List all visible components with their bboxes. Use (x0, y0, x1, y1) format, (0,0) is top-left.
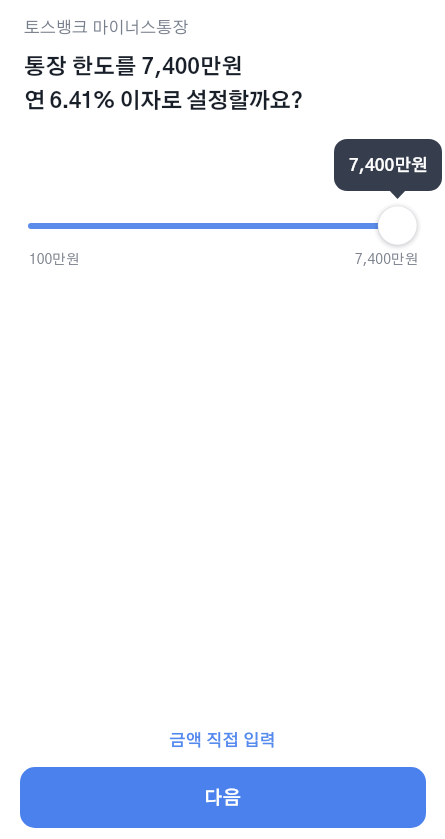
staticText: 연 6.41% 이자로 설정할까요? (24, 91, 303, 113)
staticText: 7,400만원 (355, 253, 418, 267)
button[interactable]: 다음 (20, 767, 426, 828)
staticText: 토스뱅크 마이너스통장 (24, 20, 189, 37)
staticText: 통장 한도를 7,400만원 (24, 57, 243, 79)
staticText: 100만원 (29, 253, 80, 267)
staticText: 금액 직접 입력 (169, 733, 276, 750)
button[interactable]: 금액 직접 입력 (153, 727, 292, 756)
staticText: 다음 (204, 789, 241, 808)
staticText: 7,400만원 (349, 157, 428, 174)
button[interactable]: 한도 금액 조절 슬라이더 (370, 198, 425, 253)
